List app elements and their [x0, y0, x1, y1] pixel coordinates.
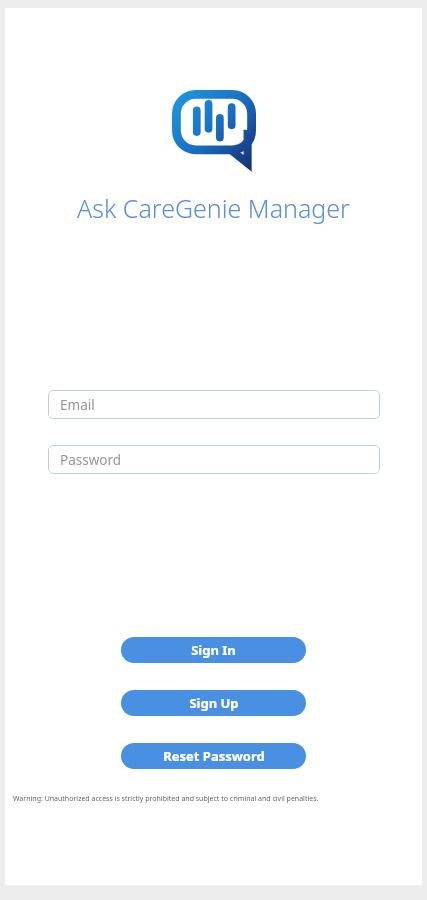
staticText: Reset Password — [163, 747, 265, 765]
staticText: Email — [60, 396, 95, 414]
staticText: Ask CareGenie Manager — [77, 191, 350, 225]
staticText: Sign Up — [189, 694, 239, 712]
button[interactable]: Reset Password — [121, 743, 306, 769]
staticText: Sign In — [191, 641, 236, 659]
staticText: Warning: Unauthorized access is strictly… — [13, 794, 319, 804]
staticText: Password — [60, 451, 122, 469]
button[interactable]: Password — [48, 445, 380, 474]
button[interactable]: Sign In — [121, 637, 306, 663]
button[interactable]: Sign Up — [121, 690, 306, 716]
button[interactable]: Email — [48, 390, 380, 419]
